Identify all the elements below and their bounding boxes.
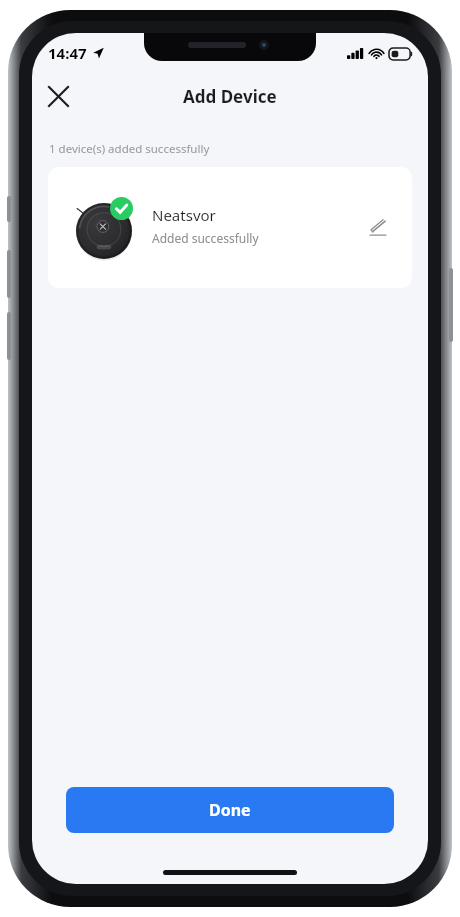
button[interactable]: Rename device <box>358 208 398 248</box>
staticText: 1 device(s) added successfully <box>49 141 210 157</box>
button[interactable]: Neatsvor <box>48 167 412 288</box>
staticText: Done <box>209 799 251 821</box>
staticText: Neatsvor <box>152 205 216 225</box>
button[interactable]: Done <box>66 787 394 833</box>
button[interactable]: Close <box>36 74 80 118</box>
staticText: Added successfully <box>152 230 259 246</box>
staticText: Add Device <box>183 85 277 108</box>
staticText: 14:47 <box>48 43 87 63</box>
